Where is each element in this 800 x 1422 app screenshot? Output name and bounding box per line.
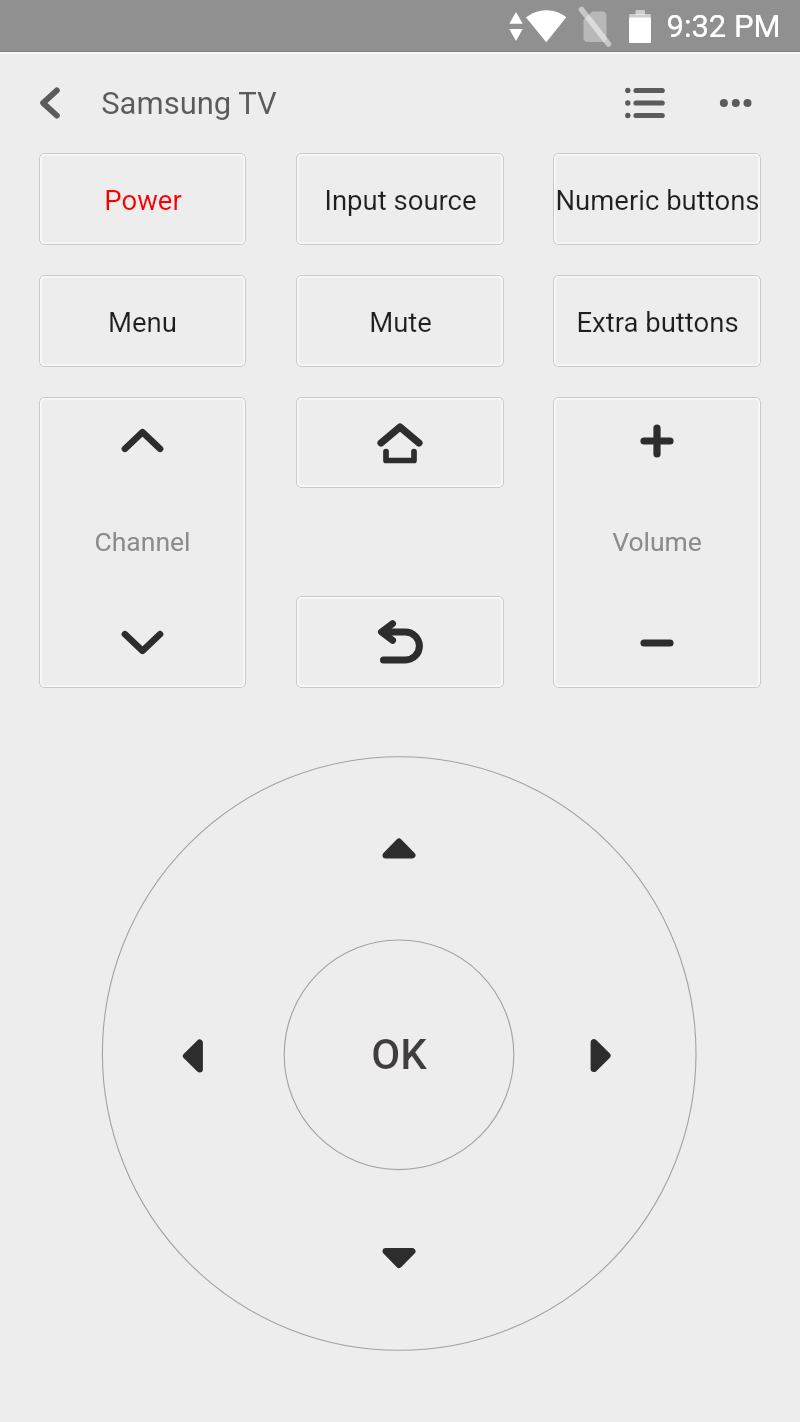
- button[interactable]: Direction pad: [0, 0, 800, 1422]
- staticText: Numeric buttons: [555, 184, 760, 216]
- button[interactable]: More options: [700, 67, 772, 139]
- staticText: OK: [371, 1030, 427, 1079]
- button[interactable]: Channel list: [608, 65, 684, 141]
- staticText: Mute: [369, 306, 432, 338]
- button[interactable]: Channel: [39, 397, 246, 688]
- staticText: 9:32 PM: [666, 8, 781, 44]
- button[interactable]: Power: [39, 153, 246, 245]
- button[interactable]: Mute: [296, 275, 504, 367]
- staticText: Volume: [612, 526, 702, 557]
- staticText: Menu: [108, 306, 177, 338]
- staticText: Input source: [324, 184, 477, 216]
- button[interactable]: Back: [296, 596, 504, 688]
- staticText: Extra buttons: [576, 306, 739, 338]
- button[interactable]: Numeric buttons: [553, 153, 761, 245]
- staticText: Samsung TV: [101, 85, 277, 121]
- button[interactable]: Extra buttons: [553, 275, 761, 367]
- button[interactable]: Home: [296, 397, 504, 488]
- staticText: Channel: [94, 526, 191, 557]
- button[interactable]: Navigate up: [22, 75, 78, 131]
- staticText: Power: [104, 184, 182, 216]
- button[interactable]: Input source: [296, 153, 504, 245]
- button[interactable]: Volume: [553, 397, 761, 688]
- button[interactable]: Menu: [39, 275, 246, 367]
